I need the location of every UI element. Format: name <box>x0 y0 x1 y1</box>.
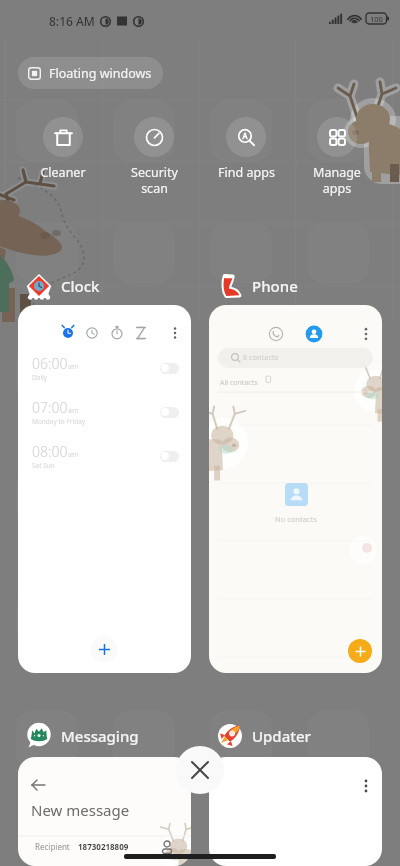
button[interactable]: Messaging <box>22 720 143 752</box>
staticText: 06:00 <box>32 354 68 373</box>
staticText: 07:00 <box>32 398 68 417</box>
staticText: Recipient <box>35 841 70 852</box>
button[interactable]: Add alarm <box>91 636 117 662</box>
button[interactable]: Security scan <box>109 117 199 196</box>
staticText: Monday to Friday <box>32 417 86 426</box>
button[interactable]: Manage apps <box>292 117 382 196</box>
staticText: 100 <box>370 14 383 24</box>
staticText: Sat Sun <box>32 461 55 470</box>
button[interactable]: 07:00 <box>18 392 191 432</box>
staticText: No contacts <box>275 514 317 524</box>
button[interactable]: Floating windows <box>18 57 163 89</box>
staticText: Messaging <box>61 726 139 746</box>
button[interactable]: 08:00 <box>18 436 191 476</box>
button[interactable] <box>209 757 382 866</box>
staticText: All contacts <box>220 378 258 388</box>
button[interactable]: Cleaner <box>18 117 108 181</box>
staticText: Find apps <box>218 164 275 181</box>
staticText: Phone <box>252 276 298 296</box>
button[interactable]: 06:00 <box>18 348 191 388</box>
button[interactable]: Add contact <box>348 639 372 663</box>
button[interactable]: Close all apps <box>176 746 224 794</box>
button[interactable]: 06:00 <box>18 305 191 673</box>
button[interactable]: Find apps <box>201 117 291 181</box>
staticText: Daily <box>32 373 48 382</box>
staticText: Floating windows <box>49 65 152 82</box>
staticText: Clock <box>61 276 100 296</box>
staticText: 8:16 AM <box>49 13 95 29</box>
staticText: New message <box>31 800 130 820</box>
staticText: 08:00 <box>32 442 68 461</box>
staticText: Manage apps <box>313 164 361 196</box>
staticText: am <box>68 406 79 416</box>
staticText: Security scan <box>131 164 178 196</box>
staticText: am <box>68 362 79 372</box>
staticText: 18730218809 <box>78 841 129 852</box>
button[interactable]: New message <box>18 757 191 866</box>
button[interactable]: Updater <box>213 720 315 752</box>
staticText: Cleaner <box>40 164 86 181</box>
button[interactable]: ll contacts <box>209 305 382 673</box>
button[interactable]: Phone <box>213 270 302 302</box>
staticText: Updater <box>252 726 311 746</box>
staticText: am <box>68 450 79 460</box>
button[interactable]: Clock <box>22 270 104 302</box>
staticText: ll contacts <box>243 352 279 362</box>
